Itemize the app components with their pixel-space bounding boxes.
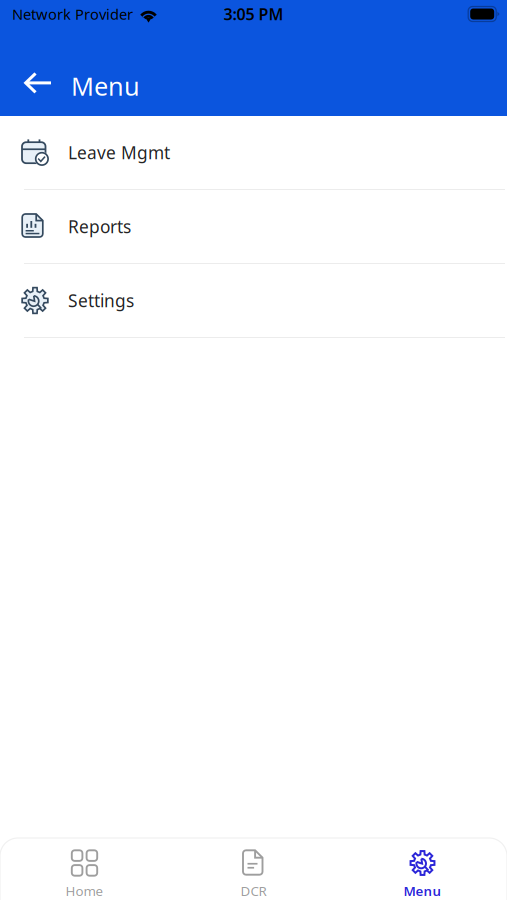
button[interactable]: Home [0, 838, 169, 900]
staticText: Leave Mgmt [68, 141, 170, 164]
staticText: Reports [68, 215, 131, 238]
staticText: Menu [71, 69, 140, 103]
staticText: Menu [403, 882, 441, 900]
button[interactable]: Menu [338, 838, 507, 900]
staticText: DCR [240, 882, 266, 900]
staticText: Home [65, 882, 103, 900]
button[interactable]: Leave Mgmt [0, 116, 507, 190]
staticText: Network Provider [12, 4, 133, 24]
staticText: Settings [68, 289, 134, 312]
button[interactable]: Settings [0, 264, 507, 338]
button[interactable]: Reports [0, 190, 507, 264]
button[interactable]: DCR [169, 838, 338, 900]
button[interactable]: Back [16, 61, 60, 105]
staticText: 3:05 PM [223, 3, 283, 25]
